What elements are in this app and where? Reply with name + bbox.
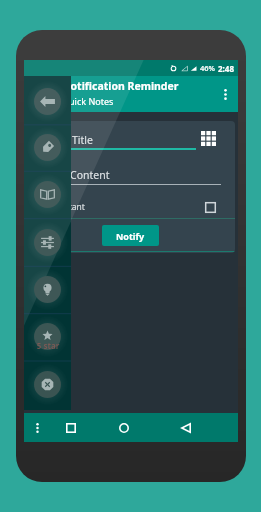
button[interactable]: Settings (27, 222, 68, 263)
staticText: Title (72, 133, 93, 147)
button[interactable]: Notify (102, 225, 159, 246)
button[interactable]: Tips (27, 269, 68, 310)
staticText: 46% (200, 63, 215, 73)
staticText: Important (44, 201, 85, 213)
staticText: Quick Notes (62, 95, 114, 107)
button[interactable]: Back (156, 413, 215, 442)
staticText: Notification Reminder (62, 79, 179, 93)
button[interactable]: Notes (27, 174, 68, 215)
staticText: 2:48 (218, 63, 234, 74)
button[interactable]: Rate 5 star (27, 316, 68, 357)
button[interactable]: Labels (27, 127, 68, 168)
button[interactable]: Menu (24, 413, 50, 442)
button[interactable]: Recents (50, 413, 92, 442)
staticText: Notify (116, 230, 145, 242)
button[interactable]: More options (212, 81, 238, 107)
button[interactable]: Home (92, 413, 156, 442)
button[interactable]: Back (27, 81, 68, 122)
staticText: Content (70, 168, 110, 182)
button[interactable]: Important (27, 199, 235, 215)
button[interactable]: Exit (27, 364, 68, 405)
button[interactable]: Apps (198, 128, 218, 148)
staticText: 5 star (32, 340, 64, 351)
